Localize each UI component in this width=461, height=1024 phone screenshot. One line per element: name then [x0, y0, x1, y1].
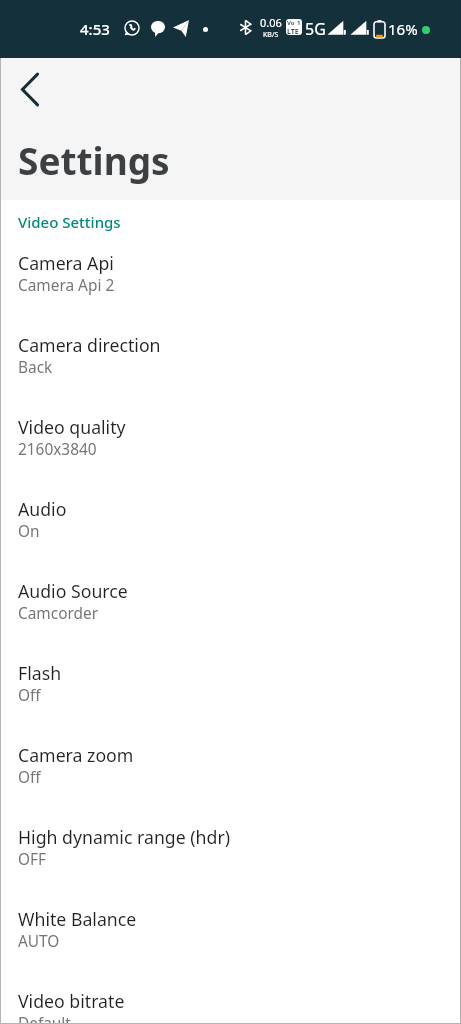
staticText: Video quality [18, 415, 126, 439]
staticText: Camera Api [18, 251, 114, 275]
staticText: Camera Api 2 [18, 275, 115, 296]
staticText: Audio [18, 497, 67, 521]
staticText: 2160x3840 [18, 439, 97, 460]
staticText: Settings [18, 135, 170, 185]
button[interactable]: Back [6, 65, 54, 113]
button[interactable]: Camera direction [0, 324, 461, 406]
staticText: KB/S [263, 30, 279, 40]
staticText: LTE [287, 27, 299, 35]
staticText: Camcorder [18, 603, 99, 624]
button[interactable]: Audio Source [0, 570, 461, 652]
button[interactable]: High dynamic range (hdr) [0, 816, 461, 898]
button[interactable]: Camera Api [0, 242, 461, 324]
staticText: 5G [305, 18, 326, 40]
staticText: High dynamic range (hdr) [18, 825, 231, 849]
staticText: On [18, 521, 40, 542]
staticText: Flash [18, 661, 62, 685]
staticText: White Balance [18, 907, 137, 931]
button[interactable]: White Balance [0, 898, 461, 980]
staticText: Video bitrate [18, 989, 125, 1013]
button[interactable]: Audio [0, 488, 461, 570]
button[interactable]: Camera zoom [0, 734, 461, 816]
staticText: 0.06 [260, 15, 282, 30]
staticText: 4:53 [80, 19, 110, 39]
staticText: Off [18, 767, 41, 788]
staticText: Back [18, 357, 53, 378]
staticText: Video Settings [18, 212, 121, 232]
staticText: Camera direction [18, 333, 161, 357]
staticText: OFF [18, 849, 46, 870]
staticText: Default [18, 1013, 71, 1024]
button[interactable]: Flash [0, 652, 461, 734]
staticText: 1 [297, 19, 301, 27]
staticText: Vo [287, 19, 295, 27]
button[interactable]: Video bitrate [0, 980, 461, 1024]
staticText: Audio Source [18, 579, 128, 603]
button[interactable]: Video quality [0, 406, 461, 488]
staticText: 16% [388, 19, 418, 39]
staticText: Camera zoom [18, 743, 134, 767]
staticText: AUTO [18, 931, 60, 952]
staticText: Off [18, 685, 41, 706]
